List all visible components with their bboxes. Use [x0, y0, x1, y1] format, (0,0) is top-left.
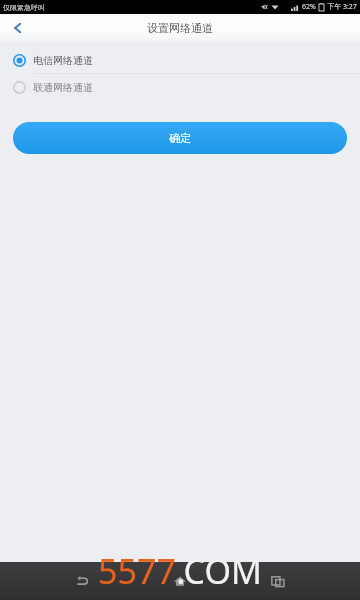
button[interactable]: 联通网络通道	[0, 74, 360, 100]
staticText: 62%	[302, 2, 316, 12]
staticText: .COM	[176, 548, 262, 594]
staticText: 仅限紧急呼叫	[3, 3, 45, 12]
staticText: 5577	[98, 548, 176, 594]
button[interactable]: Home	[166, 567, 194, 595]
staticText: 下午 3:27	[327, 2, 357, 12]
staticText: 设置网络通道	[147, 21, 213, 35]
button[interactable]: Back	[0, 14, 34, 42]
staticText: 确定	[169, 131, 191, 145]
button[interactable]: 电信网络通道	[0, 47, 360, 73]
staticText: 电信网络通道	[33, 54, 93, 67]
button[interactable]: Back	[68, 567, 96, 595]
button[interactable]: Recent apps	[264, 567, 292, 595]
button[interactable]: 确定	[13, 122, 347, 154]
staticText: 联通网络通道	[33, 81, 93, 94]
